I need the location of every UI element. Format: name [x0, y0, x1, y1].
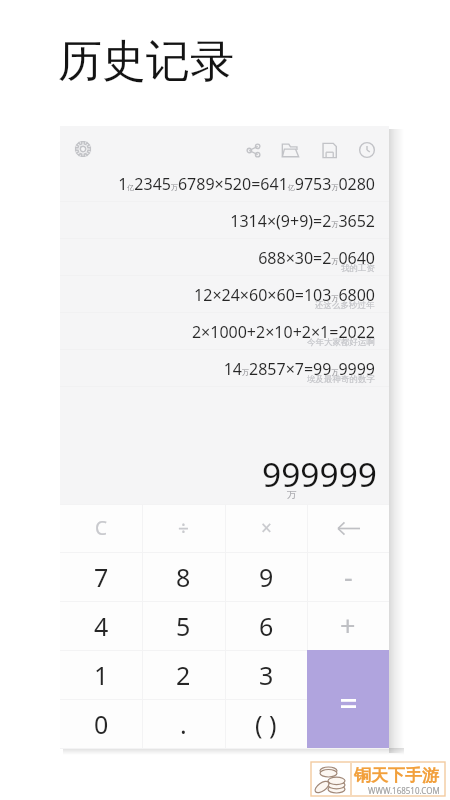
button[interactable]: 1亿2345万6789×520=641亿9753万0280: [60, 165, 389, 202]
button[interactable]: 7: [60, 552, 142, 601]
button[interactable]: C: [60, 504, 142, 552]
staticText: 0: [94, 707, 109, 741]
staticText: WWW.168510.COM: [368, 785, 440, 796]
staticText: 999999: [60, 451, 377, 497]
button[interactable]: 2×1000+2×10+2×1=2022: [60, 313, 389, 350]
button[interactable]: 5: [142, 601, 224, 650]
button[interactable]: 12×24×60×60=103万6800: [60, 276, 389, 313]
button[interactable]: Settings: [68, 134, 98, 164]
staticText: ( ): [255, 707, 277, 741]
staticText: 2: [176, 658, 191, 692]
button[interactable]: 688×30=2万0640: [60, 239, 389, 276]
staticText: 2×1000+2×10+2×1=2022: [191, 321, 375, 343]
button[interactable]: 1314×(9+9)=2万3652: [60, 202, 389, 239]
staticText: 12×24×60×60=103万6800: [194, 284, 375, 306]
button[interactable]: 6: [225, 601, 307, 650]
staticText: ×: [261, 515, 272, 541]
button[interactable]: Share: [238, 135, 268, 165]
staticText: 14万2857×7=99万9999: [223, 358, 375, 380]
staticText: 还这么多秒过年: [315, 300, 375, 311]
button[interactable]: 2: [142, 650, 224, 699]
button[interactable]: 1: [60, 650, 142, 699]
staticText: C: [95, 515, 108, 541]
button[interactable]: History: [352, 135, 382, 165]
button[interactable]: 0: [60, 699, 142, 748]
button[interactable]: ÷: [142, 504, 224, 552]
staticText: .: [180, 707, 187, 741]
button[interactable]: Save: [314, 135, 344, 165]
button[interactable]: .: [142, 699, 224, 748]
staticText: 铜天下手游: [354, 765, 439, 786]
staticText: -: [344, 558, 353, 595]
staticText: ÷: [178, 515, 189, 541]
staticText: 历史记录: [58, 34, 234, 89]
staticText: 埃及最神奇的数字: [307, 374, 375, 385]
button[interactable]: ( ): [225, 699, 307, 748]
button[interactable]: 8: [142, 552, 224, 601]
button[interactable]: +: [307, 601, 389, 650]
staticText: 4: [94, 609, 109, 643]
button[interactable]: 3: [225, 650, 307, 699]
button[interactable]: Backspace: [307, 504, 389, 552]
button[interactable]: -: [307, 552, 389, 601]
staticText: 9: [259, 560, 274, 594]
staticText: 7: [94, 560, 109, 594]
staticText: 1314×(9+9)=2万3652: [230, 210, 375, 232]
staticText: 3: [259, 658, 274, 692]
button[interactable]: Equals: [307, 650, 389, 748]
staticText: 6: [259, 609, 274, 643]
button[interactable]: Folder: [275, 135, 305, 165]
staticText: 5: [176, 609, 191, 643]
staticText: 8: [176, 560, 191, 594]
staticText: 1: [94, 658, 109, 692]
button[interactable]: 14万2857×7=99万9999: [60, 350, 389, 387]
button[interactable]: ×: [225, 504, 307, 552]
staticText: 今年大家都好运啊: [307, 337, 375, 348]
button[interactable]: 9: [225, 552, 307, 601]
staticText: 万: [287, 489, 297, 501]
staticText: 我的工资: [341, 263, 375, 274]
staticText: 1亿2345万6789×520=641亿9753万0280: [118, 173, 375, 195]
staticText: 688×30=2万0640: [258, 247, 375, 269]
staticText: +: [340, 607, 356, 644]
button[interactable]: 4: [60, 601, 142, 650]
